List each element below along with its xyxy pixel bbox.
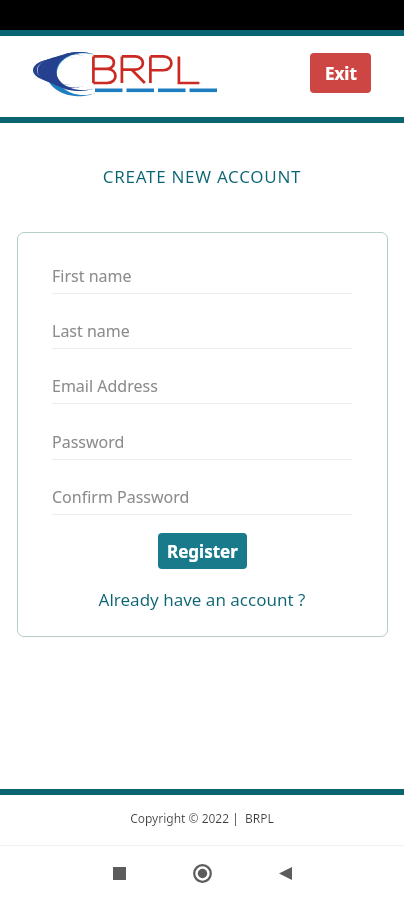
staticText: Exit	[325, 62, 357, 85]
button[interactable]: Already have an account ?	[0, 586, 404, 613]
button[interactable]: Confirm Password	[52, 486, 352, 508]
button[interactable]: Register	[158, 533, 247, 569]
staticText: CREATE NEW ACCOUNT	[0, 165, 404, 188]
staticText: Register	[167, 540, 238, 563]
button[interactable]: Password	[52, 431, 352, 453]
button[interactable]: Email Address	[52, 375, 352, 397]
button[interactable]: First name	[52, 265, 352, 287]
button[interactable]: Last name	[52, 320, 352, 342]
button[interactable]: Recent apps	[96, 850, 142, 896]
button[interactable]: Back	[262, 850, 308, 896]
staticText: Copyright © 2022 | BRPL	[0, 810, 404, 826]
button[interactable]: Exit	[310, 53, 371, 93]
button[interactable]: BRPL home	[34, 48, 214, 96]
button[interactable]: Home	[179, 850, 225, 896]
